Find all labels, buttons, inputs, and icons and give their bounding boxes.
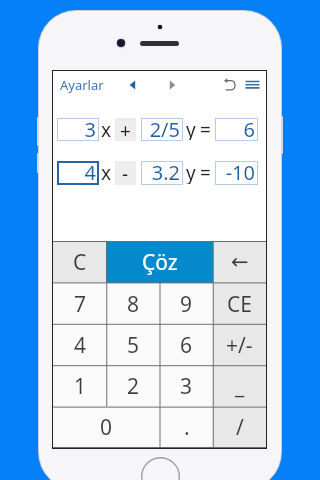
button[interactable]: -10 bbox=[215, 161, 258, 185]
button[interactable]: 1 bbox=[53, 366, 107, 407]
button[interactable]: _ bbox=[213, 366, 266, 407]
button[interactable]: 4 bbox=[57, 161, 99, 185]
button[interactable]: +/- bbox=[213, 325, 266, 366]
button[interactable]: + bbox=[115, 118, 136, 141]
staticText: / bbox=[236, 413, 244, 442]
button[interactable]: 3 bbox=[160, 366, 213, 407]
button[interactable]: / bbox=[213, 407, 266, 448]
button[interactable]: 3.2 bbox=[141, 161, 183, 185]
staticText: 8 bbox=[127, 290, 140, 319]
button[interactable]: . bbox=[160, 407, 213, 448]
button[interactable]: - bbox=[115, 161, 136, 185]
staticText: Çöz bbox=[142, 248, 178, 277]
staticText: = bbox=[200, 160, 211, 184]
staticText: . bbox=[184, 413, 190, 442]
button[interactable]: 9 bbox=[160, 283, 213, 325]
staticText: C bbox=[73, 248, 87, 277]
staticText: ← bbox=[231, 250, 249, 274]
staticText: 9 bbox=[180, 290, 193, 319]
staticText: 1 bbox=[74, 372, 87, 401]
button[interactable]: ← bbox=[213, 241, 266, 283]
button[interactable]: 3 bbox=[57, 118, 99, 141]
button[interactable]: Menu bbox=[242, 75, 262, 95]
button[interactable]: 7 bbox=[53, 283, 107, 325]
button[interactable]: 6 bbox=[160, 325, 213, 366]
button[interactable]: 4 bbox=[53, 325, 107, 366]
staticText: 6 bbox=[180, 331, 193, 360]
staticText: + bbox=[120, 118, 131, 141]
button[interactable]: 2 bbox=[107, 366, 160, 407]
staticText: 4 bbox=[74, 331, 87, 360]
staticText: +/- bbox=[226, 331, 253, 360]
staticText: -10 bbox=[225, 159, 255, 183]
staticText: 4 bbox=[84, 159, 96, 183]
staticText: 3 bbox=[180, 372, 193, 401]
staticText: 2 bbox=[127, 372, 140, 401]
staticText: 7 bbox=[74, 290, 87, 319]
button[interactable]: Next equation bbox=[161, 75, 181, 95]
staticText: CE bbox=[227, 290, 252, 319]
button[interactable]: Çöz bbox=[106, 241, 213, 283]
staticText: y bbox=[186, 117, 196, 140]
staticText: 2/5 bbox=[149, 116, 180, 139]
staticText: - bbox=[122, 161, 129, 185]
button[interactable]: 5 bbox=[107, 325, 160, 366]
staticText: 6 bbox=[243, 116, 255, 139]
staticText: x bbox=[101, 117, 112, 140]
staticText: _ bbox=[235, 372, 245, 401]
staticText: 0 bbox=[100, 413, 113, 442]
button[interactable]: C bbox=[53, 241, 106, 283]
button[interactable]: CE bbox=[213, 283, 266, 325]
button[interactable]: 0 bbox=[53, 407, 160, 448]
staticText: y bbox=[186, 160, 196, 184]
button[interactable]: 8 bbox=[107, 283, 160, 325]
button[interactable]: 2/5 bbox=[141, 118, 183, 141]
button[interactable]: Undo bbox=[220, 75, 240, 95]
staticText: 3 bbox=[84, 116, 96, 139]
button[interactable]: Ayarlar bbox=[56, 71, 108, 98]
button[interactable]: 6 bbox=[215, 118, 258, 141]
staticText: x bbox=[101, 160, 112, 184]
staticText: = bbox=[200, 117, 211, 140]
button[interactable]: Previous equation bbox=[124, 75, 144, 95]
staticText: 5 bbox=[127, 331, 140, 360]
staticText: 3.2 bbox=[151, 159, 180, 183]
